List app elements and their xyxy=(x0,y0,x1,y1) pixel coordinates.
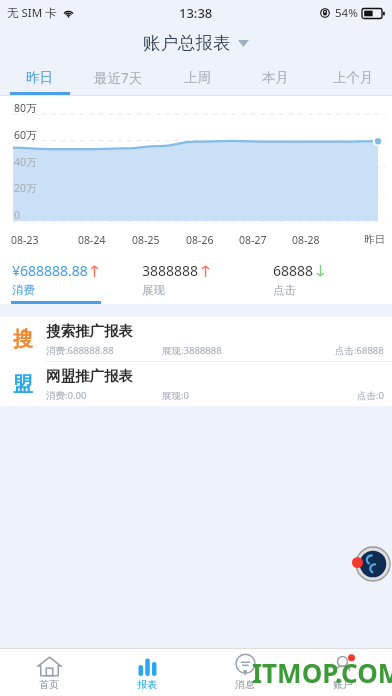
button[interactable]: 消息 xyxy=(196,649,294,696)
staticText: 0 xyxy=(14,208,21,222)
button[interactable]: 盟 xyxy=(0,362,392,406)
button[interactable]: 68888 xyxy=(261,253,392,301)
staticText: 盟 xyxy=(13,372,33,397)
button[interactable]: 首页 xyxy=(0,649,98,696)
staticText: 40万 xyxy=(14,155,37,169)
staticText: 账户总报表 xyxy=(143,32,231,54)
staticText: 08-28 xyxy=(292,233,320,247)
staticText: 搜索推广报表 xyxy=(46,322,133,340)
staticText: 本月 xyxy=(262,69,289,86)
button[interactable]: 账户 xyxy=(294,649,392,696)
staticText: 08-27 xyxy=(239,233,267,247)
button[interactable]: 上个月 xyxy=(314,60,392,95)
button[interactable]: 报表 xyxy=(98,649,196,696)
staticText: 80万 xyxy=(14,101,37,115)
staticText: ¥688888.88 xyxy=(12,261,88,280)
staticText: ITMOP.COM xyxy=(252,655,392,690)
staticText: 昨日 xyxy=(364,233,385,246)
staticText: 最近7天 xyxy=(94,69,143,87)
staticText: 54% xyxy=(335,5,358,21)
staticText: 20万 xyxy=(14,181,37,195)
staticText: 08-26 xyxy=(186,233,214,247)
staticText: 网盟推广报表 xyxy=(46,367,133,385)
staticText: 展现 xyxy=(142,283,165,297)
button[interactable]: 最近7天 xyxy=(79,60,158,95)
staticText: 消费 xyxy=(12,283,35,297)
staticText: 上周 xyxy=(184,69,211,86)
staticText: 68888 xyxy=(273,261,314,280)
staticText: 消费:688888.88 xyxy=(46,344,114,357)
button[interactable]: 上周 xyxy=(158,60,236,95)
staticText: 消息 xyxy=(235,678,255,691)
staticText: 展现:3888888 xyxy=(162,344,222,357)
button[interactable]: 搜 xyxy=(0,317,392,361)
staticText: 账户 xyxy=(333,678,353,691)
staticText: 08-24 xyxy=(78,233,106,247)
staticText: 点击:0 xyxy=(357,389,384,402)
staticText: 报表 xyxy=(137,678,157,691)
staticText: 昨日 xyxy=(26,69,53,86)
staticText: 点击 xyxy=(273,283,296,297)
button[interactable]: 账户总报表 xyxy=(0,26,392,60)
button[interactable]: 本月 xyxy=(236,60,314,95)
staticText: 上个月 xyxy=(333,69,374,86)
staticText: 展现:0 xyxy=(162,389,189,402)
staticText: 08-23 xyxy=(11,233,39,247)
button[interactable]: ¥688888.88 xyxy=(0,253,130,301)
staticText: 60万 xyxy=(14,128,37,142)
button[interactable]: 在线客服 xyxy=(356,547,390,581)
button[interactable]: 3888888 xyxy=(130,253,261,301)
staticText: 点击:68888 xyxy=(335,344,384,357)
staticText: 13:38 xyxy=(179,4,213,22)
staticText: 无 SIM 卡 xyxy=(7,5,57,21)
staticText: 3888888 xyxy=(142,261,199,280)
staticText: 首页 xyxy=(39,678,59,691)
staticText: 搜 xyxy=(13,327,33,352)
staticText: 08-25 xyxy=(132,233,160,247)
staticText: 消费:0.00 xyxy=(46,389,87,402)
button[interactable]: 昨日 xyxy=(0,60,79,95)
